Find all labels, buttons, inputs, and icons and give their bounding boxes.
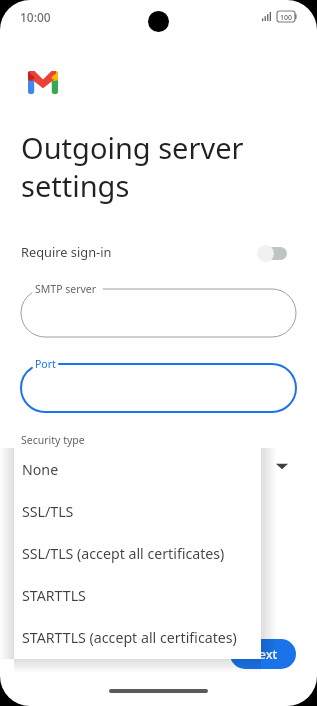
- other: Home gesture bar: [109, 689, 208, 693]
- button[interactable]: Require sign-in toggle: [257, 243, 287, 263]
- staticText: Outgoing server settings: [21, 128, 244, 205]
- staticText: Security type: [21, 433, 85, 447]
- staticText: Next: [249, 646, 278, 663]
- staticText: SSL/TLS (accept all certificates): [22, 544, 225, 563]
- staticText: 100: [280, 13, 293, 23]
- staticText: None: [22, 460, 59, 479]
- staticText: Require sign-in: [21, 243, 112, 260]
- staticText: STARTTLS: [22, 586, 86, 605]
- button[interactable]: SSL/TLS: [14, 490, 261, 532]
- button[interactable]: STARTTLS (accept all certificates): [14, 616, 261, 658]
- button[interactable]: [0, 279, 317, 347]
- button[interactable]: STARTTLS: [14, 574, 261, 616]
- staticText: SSL/TLS: [22, 502, 74, 521]
- staticText: STARTTLS (accept all certificates): [22, 628, 237, 647]
- button[interactable]: Next: [230, 639, 296, 669]
- staticText: SMTP server: [35, 282, 97, 296]
- button[interactable]: SSL/TLS (accept all certificates): [14, 532, 261, 574]
- button[interactable]: [0, 354, 317, 422]
- other: Expand security type: [276, 460, 288, 472]
- button[interactable]: Require sign-in: [0, 233, 317, 269]
- button[interactable]: None: [14, 448, 261, 490]
- staticText: 10:00: [20, 9, 51, 25]
- staticText: Port: [35, 357, 56, 371]
